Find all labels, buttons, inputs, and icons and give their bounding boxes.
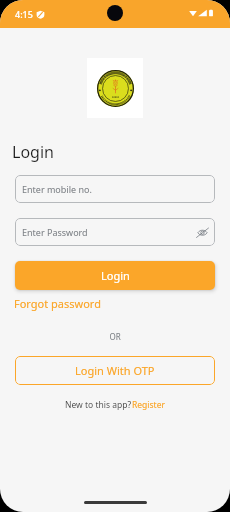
staticText: 4:15 [15,8,33,20]
staticText: Login [101,268,130,283]
button[interactable]: Register [132,399,165,411]
button[interactable]: Login With OTP [15,356,215,385]
staticText: Enter Password [22,226,88,238]
button[interactable]: Enter mobile no. [15,175,215,203]
staticText: Login With OTP [75,363,155,378]
button[interactable]: Show password [194,224,210,240]
staticText: New to this app? [65,399,132,411]
staticText: Login [12,141,54,163]
staticText: OR [0,331,230,342]
staticText: Forgot password [14,296,101,311]
button[interactable]: Login [15,261,215,290]
button[interactable]: Forgot password [14,296,101,311]
button[interactable]: Enter Password [15,218,215,246]
staticText: Enter mobile no. [22,183,92,195]
